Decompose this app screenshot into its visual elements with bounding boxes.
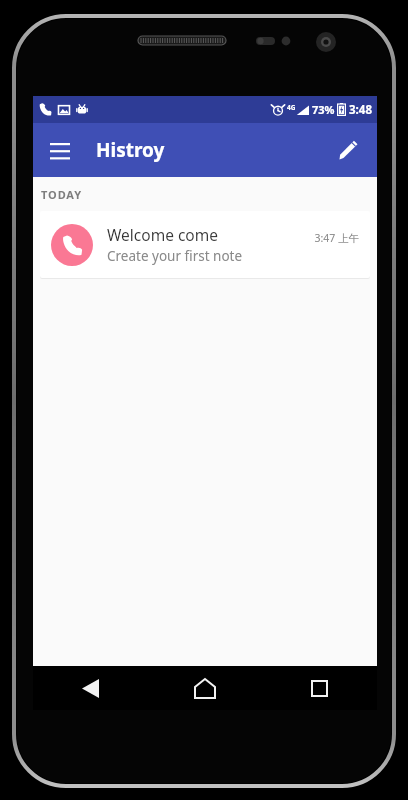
button[interactable]: Open navigation drawer [39, 129, 81, 171]
staticText: TODAY [41, 187, 82, 202]
button[interactable]: Recent apps [262, 666, 377, 710]
button[interactable]: Back [33, 666, 147, 710]
staticText: Welcome come [107, 224, 218, 245]
staticText: 3:47 上午 [314, 231, 359, 245]
button[interactable]: Home [147, 666, 262, 710]
staticText: 4G [287, 103, 296, 112]
staticText: 73% [312, 102, 335, 117]
staticText: Histroy [96, 137, 165, 163]
staticText: 3:48 [349, 102, 372, 118]
staticText: Create your first note [107, 247, 243, 265]
button[interactable]: Create new note [327, 129, 369, 171]
button[interactable]: Welcome come [40, 211, 370, 278]
